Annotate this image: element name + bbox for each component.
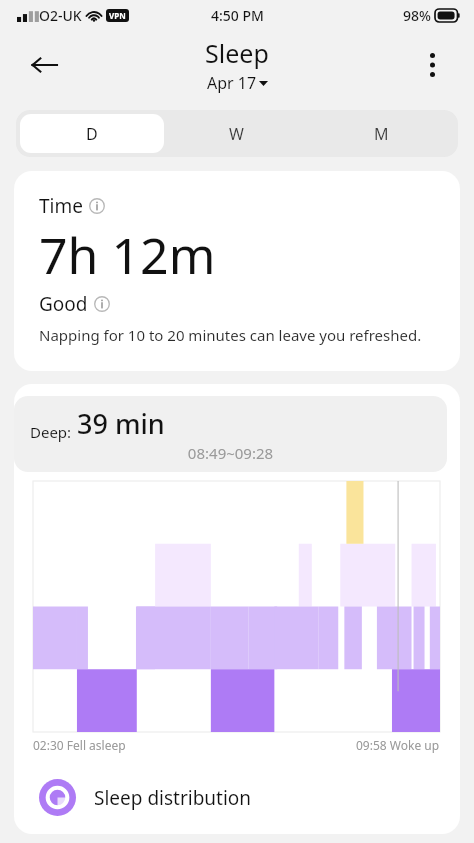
staticText: 08:49~09:28	[30, 443, 431, 463]
button[interactable]: Time	[14, 171, 460, 371]
staticText: Sleep	[205, 36, 269, 70]
staticText: Deep:	[30, 422, 72, 442]
staticText: 02:30 Fell asleep	[33, 737, 126, 753]
staticText: Time	[39, 193, 83, 219]
staticText: Good	[39, 291, 88, 317]
staticText: Sleep distribution	[94, 785, 252, 811]
button[interactable]: Apr 17	[207, 72, 268, 94]
button[interactable]: More options	[412, 45, 452, 85]
button[interactable]: D	[20, 114, 164, 153]
staticText: VPN	[109, 10, 126, 21]
button[interactable]: M	[309, 114, 454, 153]
staticText: 4:50 PM	[211, 6, 264, 25]
staticText: 39 min	[77, 405, 165, 442]
staticText: 98%	[403, 6, 431, 25]
staticText: W	[229, 123, 244, 145]
staticText: 09:58 Woke up	[356, 737, 440, 753]
button[interactable]: W	[164, 114, 309, 153]
staticText: Apr 17	[207, 72, 257, 94]
button[interactable]: Sleep distribution	[14, 777, 460, 834]
staticText: M	[374, 123, 389, 145]
staticText: O2-UK	[39, 6, 82, 25]
staticText: 7h 12m	[39, 221, 216, 289]
button[interactable]: Back	[22, 43, 66, 87]
staticText: Napping for 10 to 20 minutes can leave y…	[39, 325, 422, 345]
staticText: D	[86, 123, 98, 145]
